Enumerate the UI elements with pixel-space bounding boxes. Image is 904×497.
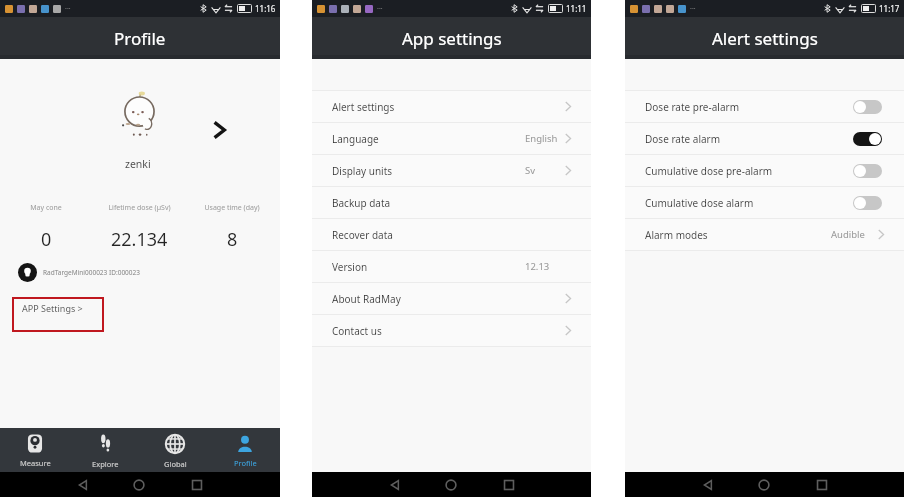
button[interactable]: Off bbox=[853, 164, 882, 178]
staticText: Usage time (day) bbox=[204, 203, 260, 213]
staticText: Contact us bbox=[332, 324, 382, 338]
staticText: Recover data bbox=[332, 228, 393, 242]
staticText: Measure bbox=[20, 458, 51, 468]
staticText: Alarm modes bbox=[645, 228, 708, 242]
button[interactable]: Home bbox=[132, 478, 146, 492]
button[interactable]: Edit profile bbox=[206, 117, 232, 143]
button[interactable]: Dose rate alarm bbox=[625, 123, 904, 154]
staticText: APP Settings > bbox=[22, 302, 83, 314]
staticText: Cumulative dose alarm bbox=[645, 196, 754, 210]
button[interactable]: Back bbox=[76, 478, 90, 492]
button[interactable]: Version bbox=[312, 251, 591, 282]
button[interactable]: Cumulative dose pre-alarm bbox=[625, 155, 904, 186]
staticText: Alert settings bbox=[332, 100, 395, 114]
staticText: Profile bbox=[234, 458, 257, 468]
button[interactable]: Profile bbox=[210, 428, 280, 472]
button[interactable]: Global bbox=[140, 428, 210, 472]
button[interactable]: Contact us bbox=[312, 315, 591, 346]
button[interactable]: zenki bbox=[100, 157, 176, 171]
button[interactable]: Back bbox=[701, 478, 715, 492]
staticText: 11:11 bbox=[566, 3, 587, 14]
button[interactable]: Recents bbox=[815, 478, 829, 492]
staticText: 12.13 bbox=[525, 260, 550, 273]
staticText: Explore bbox=[92, 459, 119, 469]
staticText: 22.134 bbox=[111, 227, 168, 252]
button[interactable]: Off bbox=[853, 196, 882, 210]
button[interactable]: RadTargeMini000023 ID:000023 bbox=[18, 263, 140, 282]
button[interactable]: Home bbox=[757, 478, 771, 492]
staticText: Language bbox=[332, 132, 379, 146]
button[interactable]: Language bbox=[312, 123, 591, 154]
button[interactable]: Off bbox=[853, 100, 882, 114]
button[interactable]: Alert settings bbox=[312, 91, 591, 122]
staticText: Profile bbox=[114, 27, 166, 50]
staticText: Dose rate pre-alarm bbox=[645, 100, 739, 114]
staticText: Sv bbox=[525, 164, 536, 177]
staticText: Display units bbox=[332, 164, 393, 178]
staticText: ··· bbox=[690, 4, 696, 14]
staticText: 0 bbox=[41, 227, 52, 252]
button[interactable]: Home bbox=[444, 478, 458, 492]
button[interactable]: Recents bbox=[190, 478, 204, 492]
button[interactable]: Profile avatar bbox=[114, 91, 166, 143]
staticText: App settings bbox=[402, 27, 502, 50]
button[interactable]: Back bbox=[388, 478, 402, 492]
staticText: 11:16 bbox=[255, 3, 276, 14]
button[interactable]: Cumulative dose alarm bbox=[625, 187, 904, 218]
button[interactable]: Recover data bbox=[312, 219, 591, 250]
staticText: zenki bbox=[125, 157, 151, 171]
staticText: Cumulative dose pre-alarm bbox=[645, 164, 773, 178]
staticText: Version bbox=[332, 260, 368, 274]
button[interactable]: Explore bbox=[70, 428, 140, 472]
staticText: May cone bbox=[30, 203, 62, 213]
staticText: Audible bbox=[831, 228, 865, 241]
staticText: Dose rate alarm bbox=[645, 132, 721, 146]
staticText: ··· bbox=[65, 4, 71, 14]
staticText: About RadMay bbox=[332, 292, 401, 306]
staticText: Alert settings bbox=[712, 27, 818, 50]
staticText: Backup data bbox=[332, 196, 391, 210]
button[interactable]: On bbox=[853, 132, 882, 146]
button[interactable]: Dose rate pre-alarm bbox=[625, 91, 904, 122]
staticText: ··· bbox=[377, 4, 383, 14]
staticText: RadTargeMini000023 ID:000023 bbox=[43, 268, 140, 277]
button[interactable]: Alarm modes bbox=[625, 219, 904, 250]
staticText: 11:17 bbox=[879, 3, 900, 14]
button[interactable]: Display units bbox=[312, 155, 591, 186]
staticText: English bbox=[525, 132, 558, 145]
button[interactable]: APP Settings > bbox=[12, 297, 104, 332]
staticText: Lifetime dose (µSv) bbox=[108, 203, 171, 213]
staticText: 8 bbox=[227, 227, 238, 252]
staticText: Global bbox=[164, 459, 187, 469]
button[interactable]: Backup data bbox=[312, 187, 591, 218]
button[interactable]: Recents bbox=[502, 478, 516, 492]
button[interactable]: About RadMay bbox=[312, 283, 591, 314]
button[interactable]: Measure bbox=[0, 428, 70, 472]
